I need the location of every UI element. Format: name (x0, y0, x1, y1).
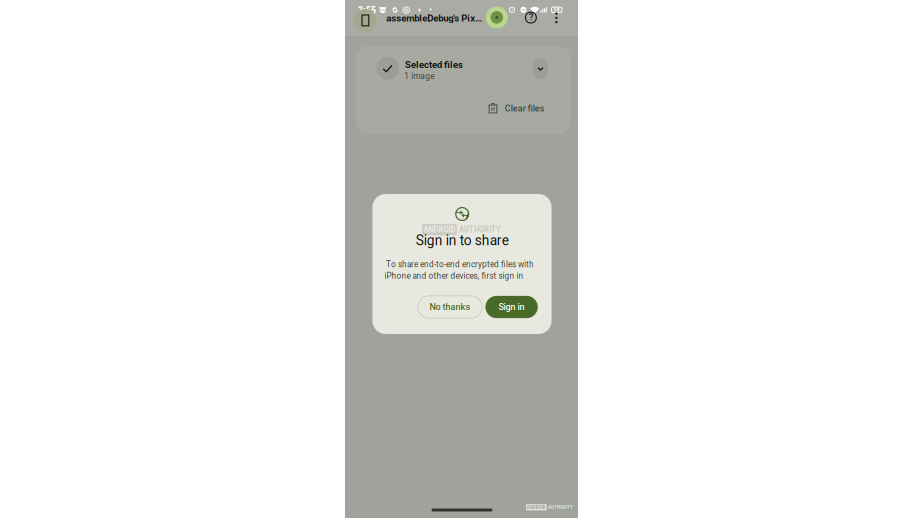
staticText: No thanks (429, 302, 470, 312)
staticText: ANDROID (423, 224, 455, 235)
staticText: iPhone and other devices, first sign in (384, 271, 523, 281)
button[interactable]: Account (486, 6, 508, 28)
staticText: AUTHORITY (459, 224, 501, 235)
staticText: Clear files (505, 103, 545, 114)
staticText: 58 (554, 6, 560, 13)
staticText: Sign in to share (416, 232, 509, 249)
button[interactable]: No thanks (418, 296, 482, 318)
button[interactable]: More options (551, 8, 561, 27)
staticText: AUTHORITY (548, 504, 573, 510)
button[interactable]: Expand (533, 58, 548, 79)
staticText: 3:55 (358, 5, 376, 17)
staticText: Sign in (499, 302, 525, 312)
button[interactable]: Clear files (483, 99, 550, 118)
staticText: assembleDebug's Pix… (386, 13, 482, 24)
button[interactable]: Sign in (485, 296, 538, 318)
button[interactable]: Help (521, 8, 540, 27)
staticText: Selected files (405, 59, 463, 70)
button[interactable]: This device (354, 9, 377, 32)
staticText: ANDROID (527, 504, 546, 510)
staticText: 1 image (404, 71, 434, 81)
staticText: To share end-to-end encrypted files with (386, 260, 534, 269)
staticText: ? (529, 12, 533, 23)
